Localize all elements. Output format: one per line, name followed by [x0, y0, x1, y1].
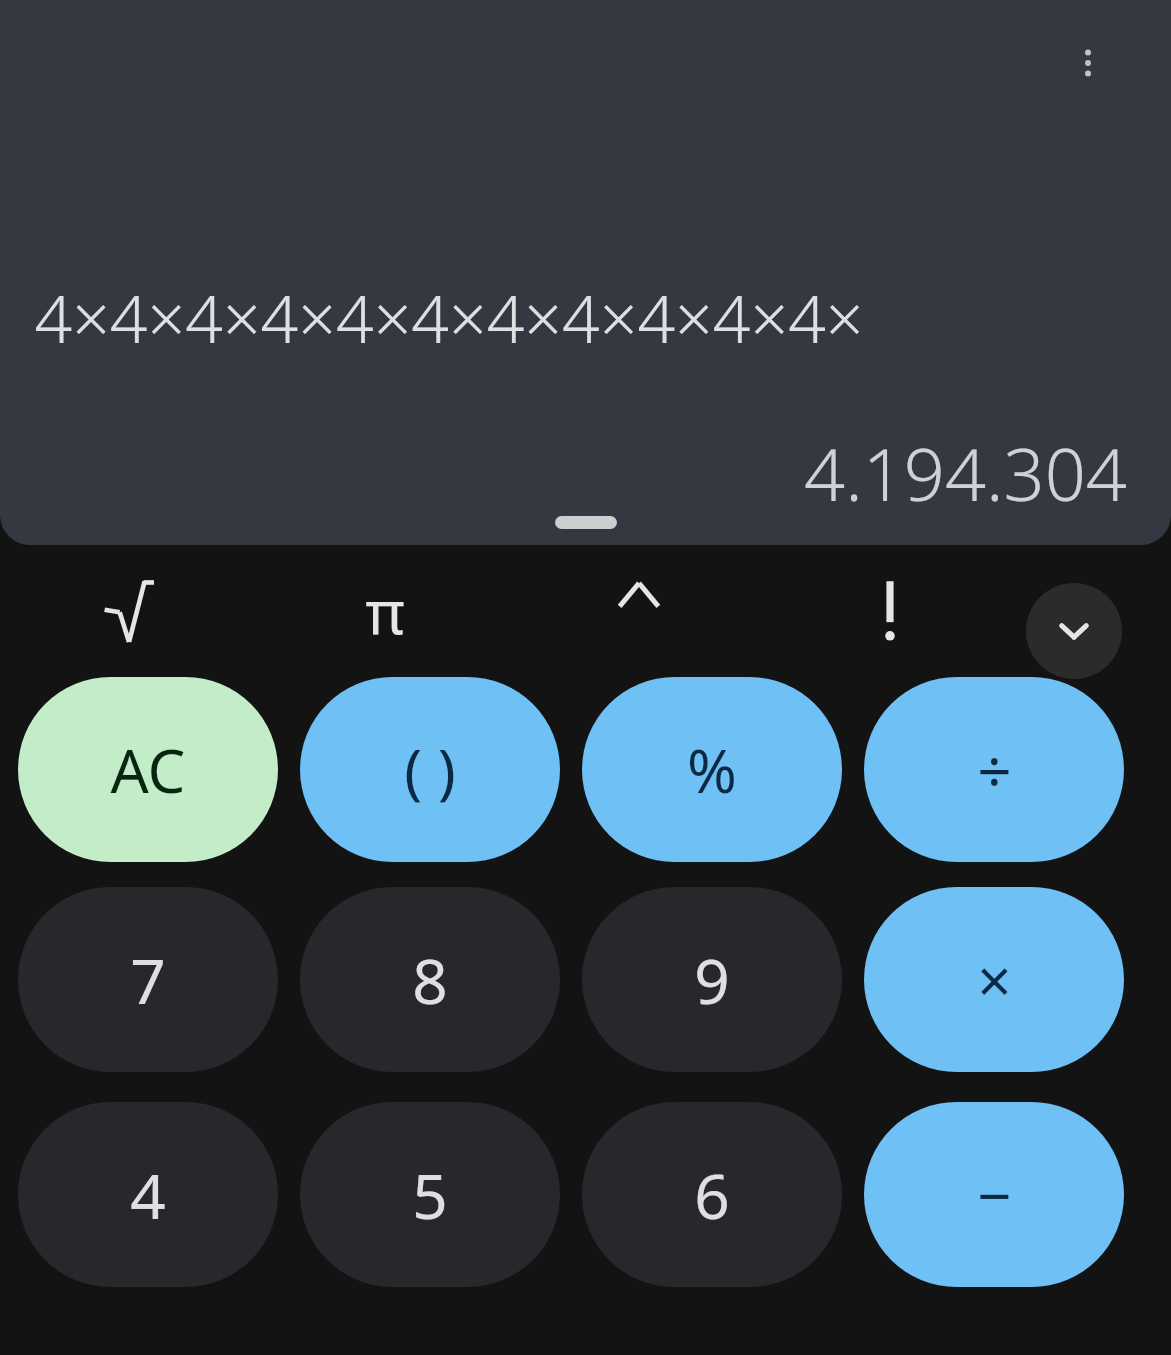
button[interactable]: Power	[584, 559, 694, 663]
button[interactable]: 4	[18, 1102, 278, 1287]
staticText: 4.194.304	[804, 424, 1127, 522]
button[interactable]: %	[582, 677, 842, 862]
button[interactable]: Square root	[73, 559, 183, 663]
staticText: ×	[977, 939, 1012, 1021]
staticText: ( )	[404, 729, 456, 811]
staticText: 9	[694, 938, 730, 1022]
button[interactable]: 7	[18, 887, 278, 1072]
button[interactable]: −	[864, 1102, 1124, 1287]
staticText: 4	[130, 1153, 166, 1237]
staticText: −	[977, 1154, 1012, 1236]
button[interactable]: AC	[18, 677, 278, 862]
staticText: 5	[412, 1153, 448, 1237]
staticText: 6	[694, 1153, 730, 1237]
button[interactable]: 6	[582, 1102, 842, 1287]
staticText: 4×4×4×4×4×4×4×4×4×4×4×	[34, 272, 864, 362]
staticText: %	[687, 729, 737, 811]
button[interactable]: 5	[300, 1102, 560, 1287]
staticText: π	[365, 570, 405, 652]
button[interactable]: 9	[582, 887, 842, 1072]
button[interactable]: ( )	[300, 677, 560, 862]
button[interactable]: Factorial	[835, 559, 945, 663]
staticText: ÷	[977, 729, 1012, 811]
button[interactable]: 8	[300, 887, 560, 1072]
button[interactable]: Pi	[330, 559, 440, 663]
staticText: 8	[412, 938, 448, 1022]
staticText: 7	[130, 938, 166, 1022]
button[interactable]: More options	[1057, 32, 1119, 94]
button[interactable]: ÷	[864, 677, 1124, 862]
button[interactable]: Collapse	[1026, 583, 1122, 679]
staticText: AC	[110, 729, 186, 811]
button[interactable]: ×	[864, 887, 1124, 1072]
